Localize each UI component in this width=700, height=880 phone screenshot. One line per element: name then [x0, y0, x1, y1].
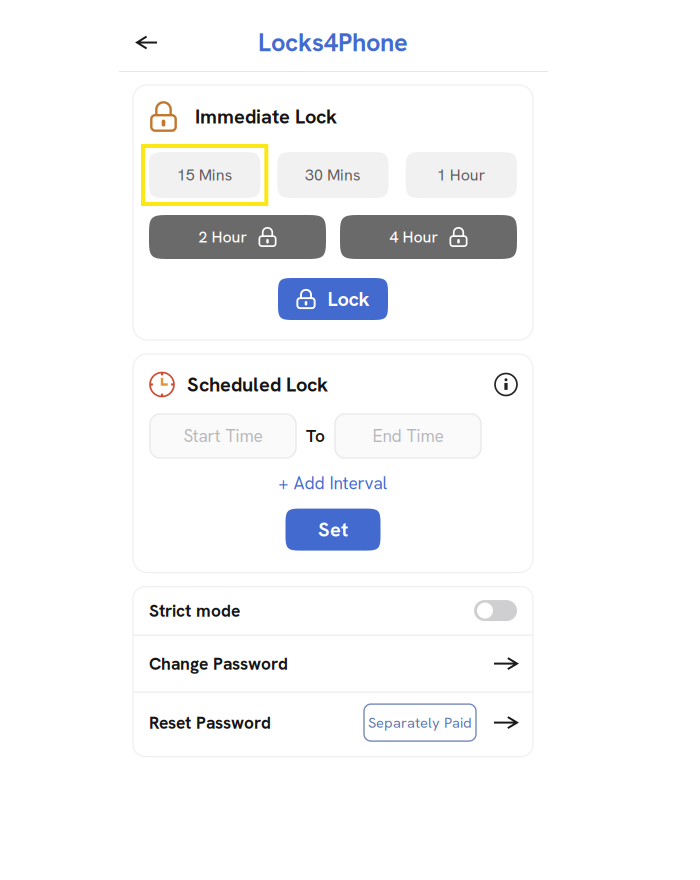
button[interactable]: + Add Interval [268, 467, 397, 500]
button[interactable]: 2 Hour [149, 215, 326, 259]
staticText: Start Time [183, 425, 262, 447]
button[interactable]: Information [495, 373, 517, 395]
staticText: Strict mode [149, 599, 240, 622]
staticText: Immediate Lock [195, 103, 337, 130]
staticText: 15 Mins [177, 165, 233, 185]
staticText: 4 Hour [389, 227, 438, 247]
button[interactable]: 4 Hour [340, 215, 517, 259]
button[interactable]: 1 Hour [406, 152, 517, 198]
button[interactable]: 30 Mins [277, 152, 389, 198]
button[interactable]: 15 Mins [149, 152, 260, 198]
button[interactable]: End Time [335, 414, 481, 458]
staticText: Locks4Phone [258, 26, 408, 59]
staticText: 1 Hour [437, 165, 486, 185]
staticText: Change Password [149, 652, 288, 675]
staticText: + Add Interval [278, 472, 387, 495]
button[interactable]: Strict mode [133, 587, 533, 635]
staticText: Separately Paid [368, 713, 472, 732]
staticText: Lock [327, 286, 369, 312]
staticText: Set [318, 517, 348, 543]
staticText: Scheduled Lock [187, 371, 328, 398]
button[interactable]: Start Time [150, 414, 296, 458]
button[interactable]: Back [125, 24, 169, 60]
button[interactable]: Lock [278, 278, 388, 320]
staticText: 30 Mins [305, 165, 361, 185]
staticText: Reset Password [149, 711, 271, 734]
staticText: 2 Hour [198, 227, 247, 247]
staticText: To [306, 425, 325, 447]
button[interactable]: Set [285, 509, 380, 551]
button[interactable]: Reset Password [133, 693, 533, 757]
button[interactable]: Change Password [133, 636, 533, 692]
staticText: End Time [372, 425, 443, 447]
